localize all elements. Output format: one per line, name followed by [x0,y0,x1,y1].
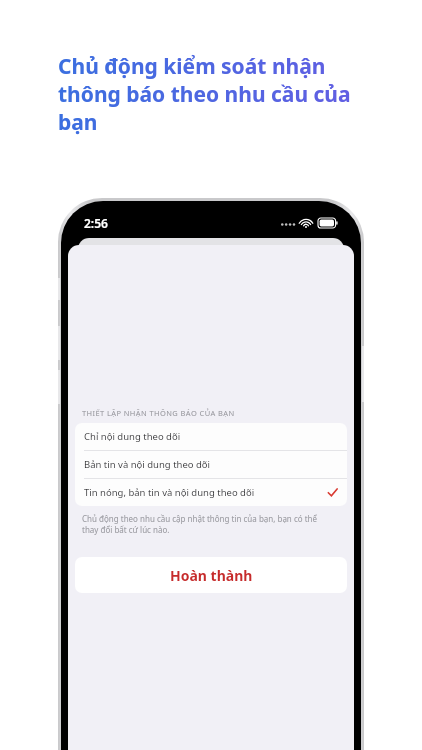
staticText: Bản tin và nội dung theo dõi [84,458,211,471]
button[interactable]: Bản tin và nội dung theo dõi [75,451,347,478]
staticText: THIẾT LẬP NHẬN THÔNG BÁO CỦA BẠN [82,408,235,418]
staticText: Chỉ nội dung theo dõi [84,430,181,443]
button[interactable]: Tin nóng, bản tin và nội dung theo dõi [75,479,347,506]
staticText: 2:56 [84,215,108,231]
staticText: Chủ động kiểm soát nhận thông báo theo n… [58,52,380,136]
button[interactable]: Chỉ nội dung theo dõi [75,423,347,450]
staticText: Hoàn thành [170,566,253,585]
button[interactable]: Hoàn thành [75,557,347,593]
staticText: Tin nóng, bản tin và nội dung theo dõi [84,486,255,499]
other: Selected [327,487,338,498]
staticText: Chủ động theo nhu cầu cập nhật thông tin… [82,513,332,535]
